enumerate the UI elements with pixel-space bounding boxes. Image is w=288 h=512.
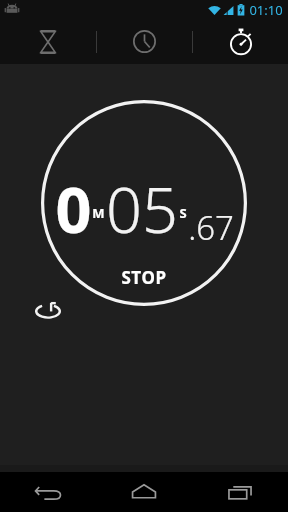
button[interactable]: Recent apps — [192, 472, 288, 512]
staticText: 0 — [55, 166, 92, 252]
button[interactable]: 0 — [0, 64, 288, 465]
button[interactable]: Lap — [31, 296, 65, 324]
button[interactable]: Back — [0, 472, 96, 512]
staticText: M — [92, 204, 105, 222]
staticText: 05 — [106, 166, 178, 252]
button[interactable]: Home — [96, 472, 192, 512]
button[interactable]: Timer — [0, 19, 96, 64]
staticText: STOP — [121, 266, 167, 289]
staticText: .67 — [188, 205, 234, 250]
staticText: S — [179, 204, 187, 222]
button[interactable]: Stopwatch — [193, 19, 288, 64]
button[interactable]: Clock — [97, 19, 192, 64]
staticText: 01:10 — [249, 1, 283, 19]
